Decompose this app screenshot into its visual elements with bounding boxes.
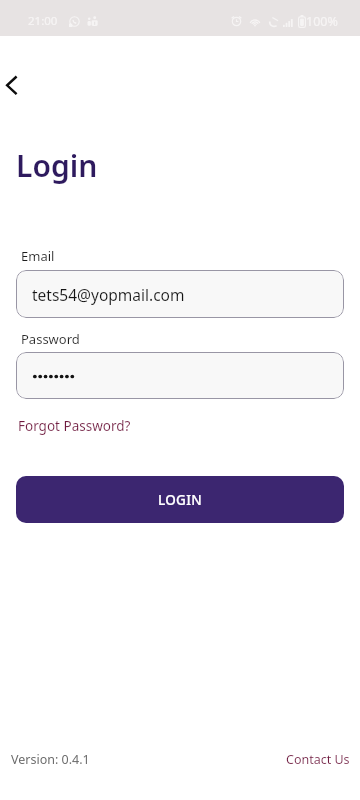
staticText: LOGIN — [158, 491, 203, 509]
staticText: Version: 0.4.1 — [11, 751, 90, 768]
staticText: Password — [21, 330, 80, 348]
staticText: Login — [16, 145, 98, 186]
button[interactable]: Forgot Password? — [16, 413, 133, 439]
button[interactable]: Contact Us — [284, 747, 352, 772]
button[interactable]: LOGIN — [16, 476, 344, 523]
staticText: Forgot Password? — [18, 417, 131, 435]
button[interactable]: Back — [0, 63, 44, 107]
button[interactable]: tets54@yopmail.com — [16, 270, 344, 318]
staticText: Contact Us — [286, 751, 350, 768]
staticText: 100% — [306, 13, 338, 30]
staticText: Email — [21, 247, 55, 265]
button[interactable] — [16, 352, 344, 399]
staticText: 21:00 — [28, 13, 58, 29]
staticText: tets54@yopmail.com — [32, 284, 185, 305]
